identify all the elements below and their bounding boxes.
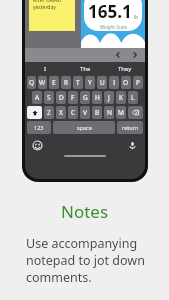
button[interactable]: Previous field <box>113 50 123 60</box>
button[interactable]: Shift <box>27 106 42 119</box>
button[interactable]: space <box>53 121 115 134</box>
button[interactable]: T <box>73 76 83 89</box>
button[interactable]: I <box>25 62 65 75</box>
button[interactable]: V <box>80 106 90 119</box>
staticText: yesterday <box>33 4 56 11</box>
button[interactable]: W <box>38 76 47 89</box>
button[interactable]: X <box>56 106 66 119</box>
button[interactable]: J <box>104 91 114 104</box>
staticText: C <box>71 108 76 117</box>
staticText: lb <box>134 14 138 20</box>
button[interactable]: Y <box>85 76 95 89</box>
button[interactable]: return <box>117 121 143 134</box>
staticText: J <box>108 93 110 102</box>
button[interactable]: D <box>56 91 66 104</box>
staticText: X <box>59 108 63 117</box>
button[interactable]: N <box>104 106 114 119</box>
button[interactable]: SUN 7/23/23 9:52 AM <box>84 0 142 31</box>
staticText: The <box>80 65 91 73</box>
button[interactable]: Q <box>27 76 36 89</box>
button[interactable]: R <box>61 76 71 89</box>
staticText: I <box>44 65 47 73</box>
button[interactable]: Dictate <box>127 140 138 151</box>
button[interactable]: S <box>44 91 54 104</box>
staticText: T <box>76 78 80 87</box>
staticText: return <box>122 124 139 131</box>
button[interactable]: B <box>92 106 102 119</box>
staticText: R <box>64 78 69 87</box>
button[interactable]: G <box>80 91 90 104</box>
staticText: Use accompanying notepad to jot down com… <box>26 235 151 286</box>
button[interactable]: C <box>68 106 78 119</box>
staticText: P <box>136 78 140 87</box>
button[interactable]: I <box>109 76 119 89</box>
button[interactable]: They <box>105 62 145 75</box>
staticText: F <box>71 93 75 102</box>
staticText: G <box>83 93 88 102</box>
button[interactable]: A <box>32 91 42 104</box>
staticText: 165.1 <box>88 0 132 23</box>
button[interactable]: F <box>68 91 78 104</box>
staticText: H <box>95 93 100 102</box>
staticText: M <box>118 108 124 117</box>
button[interactable]: H <box>92 91 102 104</box>
button[interactable]: O <box>121 76 131 89</box>
button[interactable]: M <box>116 106 126 119</box>
staticText: L <box>131 93 135 102</box>
button[interactable]: E <box>49 76 59 89</box>
staticText: 123 <box>34 124 44 131</box>
staticText: Notes <box>61 200 109 223</box>
button[interactable]: Z <box>44 106 54 119</box>
staticText: Y <box>88 78 92 87</box>
staticText: space <box>77 124 92 131</box>
button[interactable]: P <box>133 76 143 89</box>
staticText: Q <box>29 78 35 87</box>
button[interactable]: Backspace <box>128 106 143 119</box>
staticText: O <box>123 78 129 87</box>
staticText: E <box>52 78 56 87</box>
staticText: D <box>59 93 64 102</box>
staticText: U <box>100 78 105 87</box>
button[interactable]: After OMAD <box>29 0 75 31</box>
staticText: After OMAD <box>33 0 62 4</box>
staticText: W <box>39 78 46 87</box>
button[interactable]: L <box>128 91 138 104</box>
staticText: K <box>119 93 124 102</box>
button[interactable]: The <box>65 62 105 75</box>
staticText: N <box>107 108 112 117</box>
staticText: S <box>47 93 51 102</box>
staticText: B <box>95 108 100 117</box>
button[interactable]: Next field <box>130 50 140 60</box>
staticText: I <box>113 78 116 87</box>
staticText: Z <box>47 108 51 117</box>
staticText: They <box>118 65 132 73</box>
button[interactable]: Emoji <box>32 140 43 151</box>
button[interactable]: U <box>97 76 107 89</box>
staticText: A <box>35 93 40 102</box>
staticText: Weight Scale <box>100 24 127 30</box>
button[interactable]: 123 <box>27 121 51 134</box>
staticText: V <box>83 108 87 117</box>
button[interactable]: K <box>116 91 126 104</box>
